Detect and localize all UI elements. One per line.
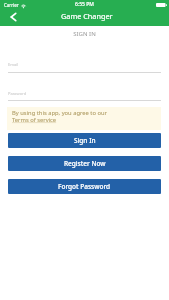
staticText: Game Changer <box>61 11 113 21</box>
button[interactable]: Register Now <box>8 156 161 171</box>
staticText: Sign In <box>74 136 96 145</box>
button[interactable]: Forgot Password <box>8 179 161 194</box>
staticText: Register Now <box>64 159 106 168</box>
button[interactable]: Sign In <box>8 133 161 148</box>
button[interactable]: Email <box>8 58 161 73</box>
staticText: Forgot Password <box>58 182 111 191</box>
button[interactable]: Terms of service <box>12 116 57 124</box>
staticText: Carrier <box>4 2 19 8</box>
staticText: By using this app, you agree to our <box>12 109 107 117</box>
button[interactable]: Back <box>0 8 26 25</box>
staticText: SIGN IN <box>0 30 169 38</box>
button[interactable]: Password <box>8 86 161 101</box>
staticText: 6:55 PM <box>75 1 94 8</box>
staticText: Password <box>8 91 27 96</box>
staticText: Email <box>8 62 19 67</box>
